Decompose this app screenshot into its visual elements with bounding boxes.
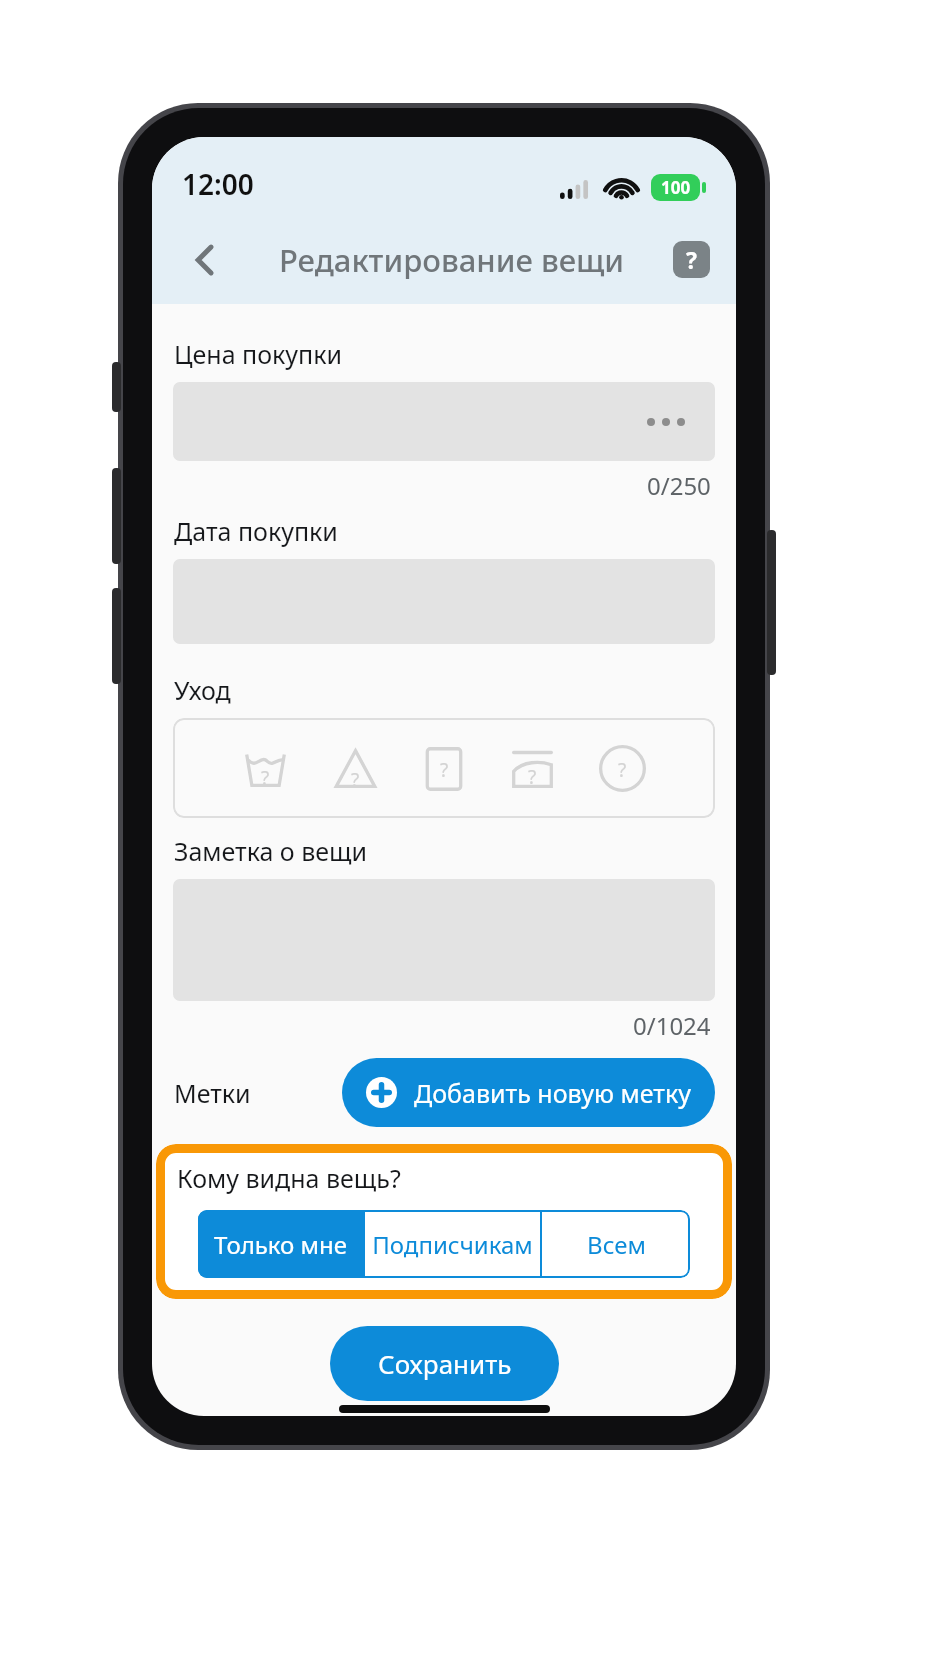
staticText: Цена покупки (174, 337, 342, 371)
staticText: Дата покупки (174, 514, 338, 548)
staticText: ? (440, 757, 449, 783)
button[interactable]: Help (673, 241, 710, 278)
button[interactable]: Только мне (198, 1210, 363, 1278)
staticText: Добавить новую метку (414, 1076, 691, 1110)
button[interactable]: Всем (542, 1210, 690, 1278)
staticText: Кому видна вещь? (177, 1161, 401, 1195)
staticText: 100 (661, 176, 691, 199)
staticText: 0/1024 (633, 1009, 711, 1042)
button[interactable]: Сохранить (330, 1326, 559, 1401)
staticText: Метки (174, 1076, 251, 1110)
staticText: 0/250 (647, 469, 711, 502)
staticText: Сохранить (378, 1346, 512, 1381)
staticText: ? (528, 764, 537, 790)
staticText: Заметка о вещи (174, 834, 368, 868)
staticText: Всем (587, 1228, 646, 1261)
staticText: 12:00 (182, 165, 254, 203)
button[interactable]: Back (178, 233, 232, 287)
staticText: ? (686, 244, 697, 275)
staticText: Только мне (214, 1228, 347, 1261)
staticText: ? (351, 767, 360, 793)
staticText: Уход (174, 673, 231, 707)
staticText: ? (618, 757, 627, 783)
staticText: ? (261, 765, 270, 791)
staticText: Подписчикам (372, 1228, 533, 1261)
staticText: Редактирование вещи (279, 239, 625, 281)
button[interactable] (173, 382, 715, 461)
button[interactable]: Подписчикам (365, 1210, 540, 1278)
button[interactable]: Добавить новую метку (342, 1058, 715, 1127)
button[interactable]: ? (173, 718, 715, 818)
